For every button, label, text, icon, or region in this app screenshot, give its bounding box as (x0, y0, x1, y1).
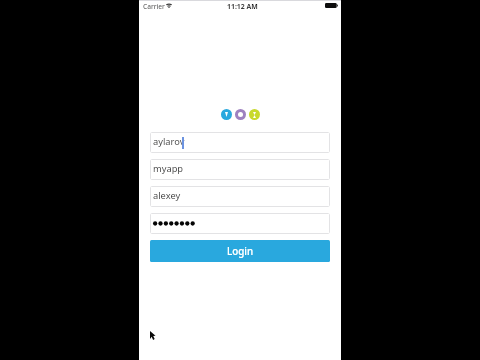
button[interactable]: Voximplant (221, 109, 232, 120)
staticText: Login (227, 245, 254, 258)
button[interactable]: alexey (150, 186, 330, 207)
button[interactable]: Hourglass (249, 109, 260, 120)
staticText: 11:12 AM (227, 2, 258, 11)
other: Wi-Fi (166, 3, 172, 8)
button[interactable]: Login (150, 240, 330, 262)
staticText: alexey (153, 189, 181, 202)
staticText: Carrier (143, 2, 165, 11)
button[interactable] (150, 213, 330, 234)
staticText: myapp (153, 162, 184, 175)
staticText: aylarov (153, 135, 185, 148)
other: Battery full (325, 3, 338, 8)
button[interactable]: Ring (235, 109, 246, 120)
button[interactable]: myapp (150, 159, 330, 180)
button[interactable]: aylarov (150, 132, 330, 153)
